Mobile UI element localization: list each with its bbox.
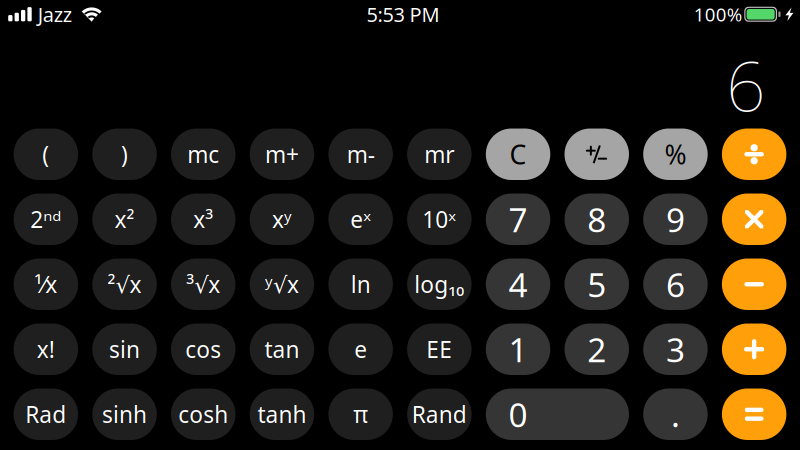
button[interactable]: tan — [250, 323, 314, 375]
button[interactable]: 9 — [643, 193, 708, 245]
staticText: x³ — [193, 204, 213, 234]
staticText: 2 — [587, 327, 606, 371]
button[interactable]: ¹⁄x — [14, 258, 78, 310]
button[interactable]: tanh — [250, 388, 314, 440]
staticText: % — [664, 136, 686, 172]
button[interactable]: Equals — [722, 388, 786, 440]
staticText: cos — [185, 334, 221, 364]
button[interactable]: m+ — [250, 128, 314, 180]
button[interactable]: Multiply — [722, 193, 786, 245]
button[interactable]: 2 — [564, 323, 629, 375]
staticText: x² — [115, 204, 135, 234]
button[interactable]: ) — [92, 128, 157, 180]
button[interactable]: 5 — [564, 258, 629, 310]
button[interactable]: . — [643, 388, 708, 440]
staticText: 6 — [726, 38, 766, 131]
button[interactable]: ( — [14, 128, 78, 180]
button[interactable]: 7 — [486, 193, 550, 245]
staticText: . — [671, 392, 680, 436]
button[interactable]: Minus — [722, 258, 786, 310]
button[interactable]: 10ˣ — [407, 193, 472, 245]
button[interactable]: ³√x — [171, 258, 235, 310]
staticText: ²√x — [108, 269, 142, 299]
button[interactable]: cosh — [171, 388, 235, 440]
staticText: ( — [42, 139, 49, 169]
staticText: xʸ — [272, 204, 292, 234]
button[interactable]: Rad — [14, 388, 78, 440]
staticText: 4 — [509, 262, 528, 306]
button[interactable]: ²√x — [92, 258, 157, 310]
button[interactable]: ʸ√x — [250, 258, 314, 310]
button[interactable]: Plus Minus — [564, 128, 629, 180]
button[interactable]: sin — [92, 323, 157, 375]
staticText: 7 — [509, 197, 528, 241]
staticText: sin — [109, 334, 140, 364]
button[interactable]: 1 — [486, 323, 550, 375]
button[interactable]: xʸ — [250, 193, 314, 245]
button[interactable]: 2ⁿᵈ — [14, 193, 78, 245]
button[interactable]: m- — [328, 128, 393, 180]
staticText: 1 — [509, 327, 528, 371]
staticText: mr — [424, 139, 454, 169]
staticText: tan — [264, 334, 299, 364]
button[interactable]: log₁₀ — [407, 258, 472, 310]
staticText: EE — [426, 334, 452, 364]
staticText: x! — [37, 334, 55, 364]
staticText: log₁₀ — [414, 269, 464, 299]
button[interactable]: % — [643, 128, 708, 180]
button[interactable]: Rand — [407, 388, 472, 440]
staticText: π — [353, 399, 368, 429]
staticText: 5 — [587, 262, 606, 306]
button[interactable]: cos — [171, 323, 235, 375]
staticText: 5:53 PM — [366, 1, 439, 28]
staticText: 9 — [666, 197, 685, 241]
button[interactable]: ln — [328, 258, 393, 310]
button[interactable]: 4 — [486, 258, 550, 310]
staticText: ) — [121, 139, 128, 169]
button[interactable]: sinh — [92, 388, 157, 440]
button[interactable]: e — [328, 323, 393, 375]
button[interactable]: mc — [171, 128, 235, 180]
button[interactable]: x³ — [171, 193, 235, 245]
staticText: Rad — [25, 399, 66, 429]
button[interactable]: eˣ — [328, 193, 393, 245]
staticText: mc — [187, 139, 219, 169]
staticText: m+ — [265, 139, 299, 169]
staticText: 2ⁿᵈ — [30, 204, 61, 234]
staticText: 0 — [508, 392, 527, 436]
staticText: 8 — [587, 197, 606, 241]
staticText: e — [354, 334, 367, 364]
button[interactable]: mr — [407, 128, 472, 180]
button[interactable]: EE — [407, 323, 472, 375]
staticText: 6 — [666, 262, 685, 306]
button[interactable]: 8 — [564, 193, 629, 245]
staticText: Jazz — [38, 1, 72, 28]
staticText: 100% — [694, 2, 743, 27]
button[interactable]: 3 — [643, 323, 708, 375]
staticText: 3 — [666, 327, 685, 371]
button[interactable]: 0 — [486, 388, 629, 440]
staticText: Rand — [412, 399, 467, 429]
staticText: ʸ√x — [265, 269, 299, 299]
button[interactable]: Divide — [722, 128, 786, 180]
button[interactable]: x² — [92, 193, 157, 245]
staticText: sinh — [102, 399, 147, 429]
staticText: ³√x — [186, 269, 220, 299]
button[interactable]: Plus — [722, 323, 786, 375]
staticText: cosh — [178, 399, 228, 429]
staticText: C — [510, 136, 527, 172]
button[interactable]: C — [486, 128, 550, 180]
staticText: tanh — [257, 399, 306, 429]
button[interactable]: x! — [14, 323, 78, 375]
staticText: ¹⁄x — [34, 269, 57, 299]
button[interactable]: π — [328, 388, 393, 440]
staticText: 10ˣ — [422, 204, 456, 234]
staticText: ln — [351, 269, 371, 299]
staticText: eˣ — [350, 204, 371, 234]
button[interactable]: 6 — [643, 258, 708, 310]
staticText: m- — [347, 139, 375, 169]
